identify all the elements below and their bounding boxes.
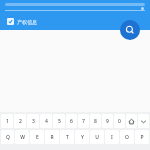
button[interactable]: 8 bbox=[90, 114, 101, 128]
button[interactable]: O bbox=[120, 130, 134, 144]
button[interactable]: W bbox=[15, 130, 29, 144]
button[interactable]: 2 bbox=[14, 114, 26, 128]
button[interactable]: Clear bbox=[5, 2, 145, 14]
staticText: 9 bbox=[106, 118, 109, 125]
button[interactable]: T bbox=[60, 130, 74, 144]
button[interactable]: 0 bbox=[114, 114, 125, 128]
button[interactable]: 6 bbox=[66, 114, 77, 128]
staticText: 8 bbox=[94, 118, 97, 125]
button[interactable]: 4 bbox=[40, 114, 52, 128]
button[interactable]: 5 bbox=[53, 114, 65, 128]
button[interactable]: Home bbox=[126, 114, 137, 128]
button[interactable]: Y bbox=[75, 130, 89, 144]
staticText: Q bbox=[6, 134, 10, 141]
button[interactable]: Search bbox=[120, 20, 140, 40]
staticText: 6 bbox=[70, 118, 73, 125]
button[interactable]: Q bbox=[1, 130, 14, 144]
staticText: R bbox=[50, 134, 54, 141]
button[interactable]: 1 bbox=[1, 114, 13, 128]
staticText: 5 bbox=[58, 118, 61, 125]
button[interactable]: I bbox=[105, 130, 119, 144]
button[interactable]: Hide keyboard bbox=[138, 114, 149, 128]
button[interactable]: 9 bbox=[102, 114, 113, 128]
staticText: U bbox=[95, 134, 99, 141]
staticText: E bbox=[36, 134, 39, 141]
staticText: 7 bbox=[82, 118, 85, 125]
staticText: 1 bbox=[6, 118, 9, 125]
button[interactable]: U bbox=[90, 130, 104, 144]
staticText: I bbox=[111, 134, 113, 141]
staticText: 3 bbox=[32, 118, 35, 125]
staticText: O bbox=[125, 134, 129, 141]
staticText: 2 bbox=[19, 118, 22, 125]
button[interactable]: 产权信息 bbox=[7, 18, 37, 25]
staticText: 4 bbox=[45, 118, 48, 125]
button[interactable]: E bbox=[30, 130, 44, 144]
button[interactable]: 7 bbox=[78, 114, 89, 128]
button[interactable]: Clear bbox=[141, 7, 144, 10]
button[interactable]: R bbox=[45, 130, 59, 144]
button[interactable]: P bbox=[135, 130, 149, 144]
staticText: T bbox=[66, 134, 69, 141]
staticText: W bbox=[20, 134, 25, 141]
staticText: 产权信息 bbox=[17, 19, 37, 25]
staticText: P bbox=[140, 134, 144, 141]
button[interactable]: 3 bbox=[27, 114, 39, 128]
staticText: 0 bbox=[118, 118, 121, 125]
staticText: Y bbox=[81, 134, 84, 141]
